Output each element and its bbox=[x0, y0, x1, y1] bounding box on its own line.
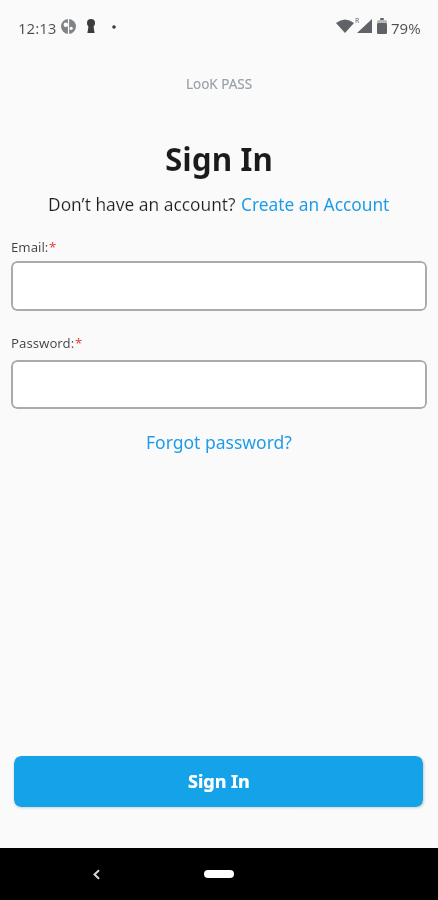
button[interactable]: Forgot password? bbox=[146, 430, 292, 454]
staticText: * bbox=[49, 238, 57, 256]
staticText: Don’t have an account? bbox=[48, 193, 241, 217]
staticText: Password: bbox=[11, 334, 75, 352]
button[interactable]: Sign In bbox=[14, 756, 423, 807]
staticText: * bbox=[75, 334, 83, 352]
button[interactable] bbox=[204, 870, 234, 878]
staticText: 79% bbox=[391, 18, 421, 38]
staticText: 12:13 bbox=[18, 18, 57, 38]
button[interactable] bbox=[84, 862, 108, 886]
button[interactable]: Create an Account bbox=[241, 193, 390, 217]
button[interactable] bbox=[11, 261, 427, 311]
staticText: Email: bbox=[11, 238, 49, 256]
staticText: Sign In bbox=[0, 137, 438, 180]
staticText: R bbox=[355, 16, 360, 26]
staticText: Sign In bbox=[188, 769, 250, 794]
staticText: LooK PASS bbox=[0, 75, 438, 93]
button[interactable] bbox=[11, 360, 427, 409]
